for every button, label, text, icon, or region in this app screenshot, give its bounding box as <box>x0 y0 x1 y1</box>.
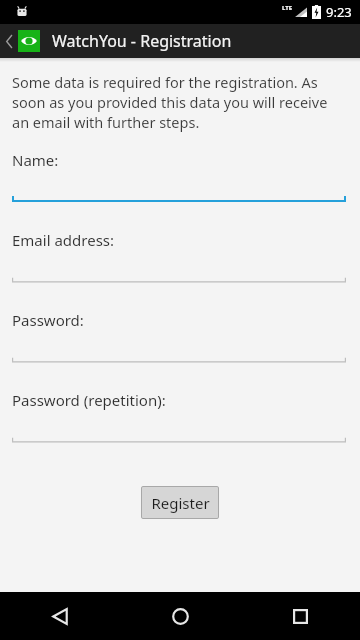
button[interactable]: Password: <box>0 310 360 390</box>
button[interactable]: Back <box>0 592 120 640</box>
button[interactable]: Home <box>120 592 240 640</box>
button[interactable]: WatchYou app icon <box>18 30 40 52</box>
button[interactable]: Register <box>141 486 219 519</box>
staticText: WatchYou - Registration <box>52 30 232 52</box>
staticText: 9:23 <box>326 3 352 21</box>
button[interactable]: Name: <box>0 150 360 230</box>
button[interactable]: Recent apps <box>240 592 360 640</box>
staticText: Password: <box>12 310 84 330</box>
staticText: Email address: <box>12 230 115 250</box>
button[interactable]: Password (repetition): <box>0 390 360 470</box>
button[interactable]: Email address: <box>0 230 360 310</box>
staticText: Some data is required for the registrati… <box>12 72 348 132</box>
staticText: LTE <box>282 4 293 12</box>
staticText: Register <box>151 493 210 513</box>
button[interactable]: Navigate up <box>0 24 18 58</box>
staticText: Password (repetition): <box>12 390 166 410</box>
staticText: Name: <box>12 150 59 170</box>
